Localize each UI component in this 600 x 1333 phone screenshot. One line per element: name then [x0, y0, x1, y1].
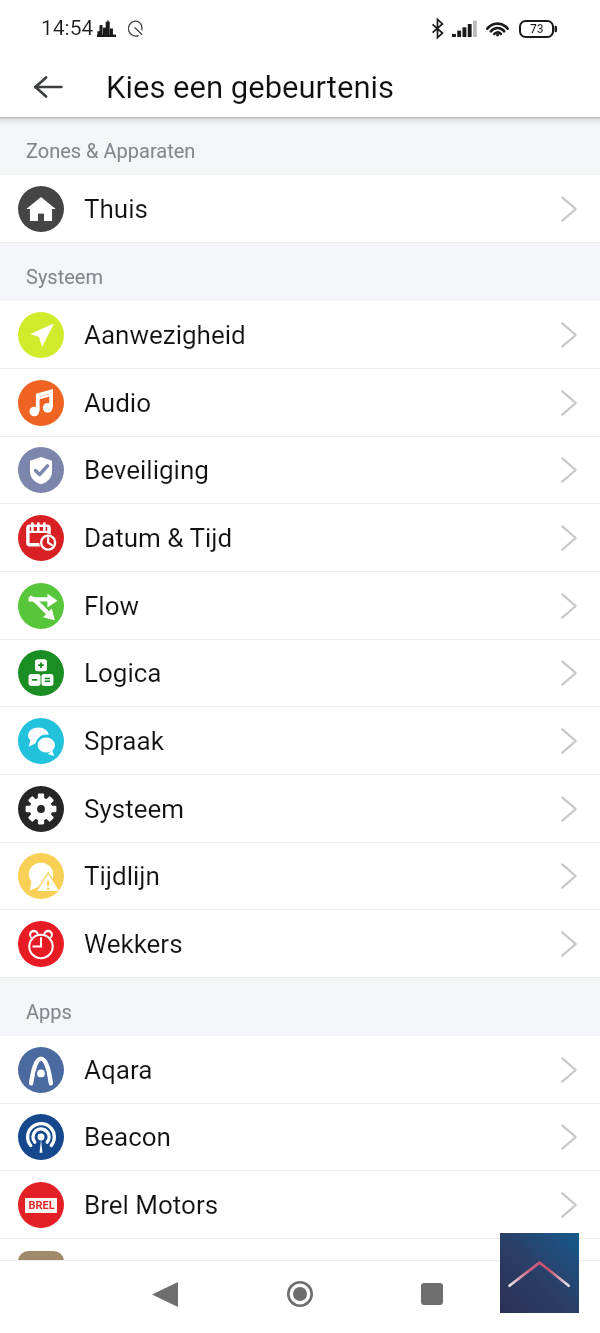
staticText: Kies een gebeurtenis	[106, 69, 395, 105]
button[interactable]: Recent apps	[404, 1266, 460, 1322]
button[interactable]: Tijdlijn	[0, 843, 600, 909]
button[interactable]: Home	[272, 1266, 328, 1322]
button[interactable]: Thuis	[0, 175, 600, 242]
staticText: 14:54	[41, 16, 94, 41]
staticText: Aqara	[84, 1055, 153, 1085]
button[interactable]: Audio	[0, 369, 600, 436]
staticText: Logica	[84, 658, 162, 688]
staticText: Spraak	[84, 726, 164, 756]
staticText: Brel Motors	[84, 1190, 219, 1220]
staticText: Audio	[84, 388, 151, 418]
staticText: Beveiliging	[84, 455, 209, 485]
staticText: 73	[530, 22, 544, 36]
button[interactable]: Flow	[0, 572, 600, 639]
staticText: Thuis	[84, 194, 148, 224]
staticText: Datum & Tijd	[84, 523, 233, 553]
button[interactable]: Aqara	[0, 1036, 600, 1103]
staticText: Zones & Apparaten	[26, 139, 196, 162]
staticText: Systeem	[26, 265, 103, 288]
staticText: Flow	[84, 591, 140, 621]
button[interactable]: Logica	[0, 640, 600, 706]
button[interactable]: Beveiliging	[0, 437, 600, 503]
button[interactable]: Wekkers	[0, 910, 600, 977]
staticText: BREL	[28, 1199, 55, 1212]
button[interactable]: Back	[137, 1266, 193, 1322]
staticText: Beacon	[84, 1122, 171, 1152]
button[interactable]: Beacon	[0, 1104, 600, 1170]
staticText: Apps	[26, 1000, 72, 1023]
button[interactable]: Systeem	[0, 775, 600, 842]
button[interactable]: Spraak	[0, 707, 600, 774]
button[interactable]: Datum & Tijd	[0, 504, 600, 571]
staticText: Wekkers	[84, 929, 183, 959]
button[interactable]: Aanwezigheid	[0, 301, 600, 368]
button[interactable]: Overlay widget	[500, 1233, 579, 1313]
staticText: Tijdlijn	[84, 861, 160, 891]
button[interactable]: BREL	[0, 1171, 600, 1238]
staticText: Systeem	[84, 794, 185, 824]
button[interactable]: Back	[17, 56, 79, 117]
staticText: Aanwezigheid	[84, 320, 246, 350]
